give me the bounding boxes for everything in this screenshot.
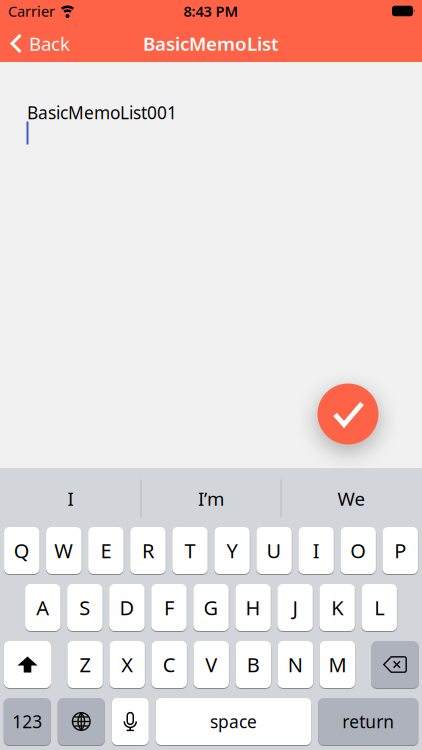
button[interactable]: Next keyboard — [58, 698, 105, 745]
button[interactable]: V — [194, 641, 229, 688]
staticText: BasicMemoList — [143, 31, 279, 56]
staticText: Q — [14, 537, 30, 564]
button[interactable]: space — [156, 698, 311, 745]
staticText: A — [36, 594, 49, 621]
staticText: D — [119, 594, 134, 621]
staticText: Y — [226, 537, 237, 564]
staticText: X — [121, 651, 133, 678]
staticText: I’m — [198, 486, 224, 511]
button[interactable]: T — [172, 527, 208, 574]
button[interactable]: N — [278, 641, 313, 688]
staticText: U — [267, 537, 282, 564]
staticText: O — [350, 537, 366, 564]
button[interactable]: Done — [317, 383, 378, 444]
button[interactable]: J — [277, 584, 313, 631]
staticText: J — [293, 594, 298, 621]
staticText: V — [205, 651, 217, 678]
staticText: C — [163, 651, 176, 678]
button[interactable]: S — [67, 584, 103, 631]
button[interactable]: I — [298, 527, 334, 574]
staticText: L — [374, 594, 384, 621]
staticText: Back — [29, 31, 70, 56]
button[interactable]: Shift — [4, 641, 51, 688]
button[interactable]: I’m — [141, 474, 280, 523]
staticText: BasicMemoList001 — [27, 101, 177, 124]
button[interactable]: H — [235, 584, 271, 631]
button[interactable]: D — [109, 584, 145, 631]
button[interactable]: W — [46, 527, 81, 574]
button[interactable]: O — [340, 527, 376, 574]
staticText: Z — [80, 651, 91, 678]
button[interactable]: Back — [10, 31, 70, 56]
button[interactable]: Y — [214, 527, 250, 574]
staticText: space — [210, 710, 257, 733]
staticText: T — [184, 537, 195, 564]
staticText: 8:43 PM — [183, 1, 238, 21]
button[interactable]: P — [382, 527, 418, 574]
button[interactable]: M — [320, 641, 355, 688]
button[interactable]: Delete — [371, 641, 418, 688]
button[interactable]: X — [109, 641, 145, 688]
staticText: W — [54, 537, 73, 564]
button[interactable]: Dictate — [112, 698, 149, 745]
staticText: H — [246, 594, 261, 621]
staticText: 123 — [12, 710, 42, 733]
staticText: We — [337, 486, 365, 511]
staticText: B — [247, 651, 260, 678]
staticText: K — [331, 594, 343, 621]
staticText: S — [79, 594, 90, 621]
staticText: F — [164, 594, 174, 621]
button[interactable]: E — [88, 527, 124, 574]
button[interactable]: K — [319, 584, 355, 631]
staticText: Carrier — [8, 1, 55, 21]
button[interactable]: B — [236, 641, 271, 688]
button[interactable]: We — [281, 474, 421, 523]
staticText: R — [142, 537, 154, 564]
button[interactable]: F — [151, 584, 187, 631]
button[interactable]: G — [193, 584, 229, 631]
staticText: N — [288, 651, 303, 678]
staticText: I — [313, 537, 320, 564]
button[interactable]: L — [361, 584, 397, 631]
button[interactable]: U — [256, 527, 292, 574]
staticText: G — [203, 594, 218, 621]
staticText: E — [100, 537, 111, 564]
button[interactable]: C — [151, 641, 187, 688]
staticText: P — [394, 537, 406, 564]
button[interactable]: Q — [4, 527, 39, 574]
staticText: M — [328, 651, 346, 678]
button[interactable]: A — [25, 584, 60, 631]
staticText: I — [67, 486, 73, 511]
button[interactable]: return — [318, 698, 418, 745]
button[interactable]: 123 — [4, 698, 51, 745]
button[interactable]: R — [130, 527, 166, 574]
button[interactable]: Z — [67, 641, 103, 688]
staticText: return — [342, 710, 394, 733]
button[interactable]: I — [0, 474, 140, 523]
